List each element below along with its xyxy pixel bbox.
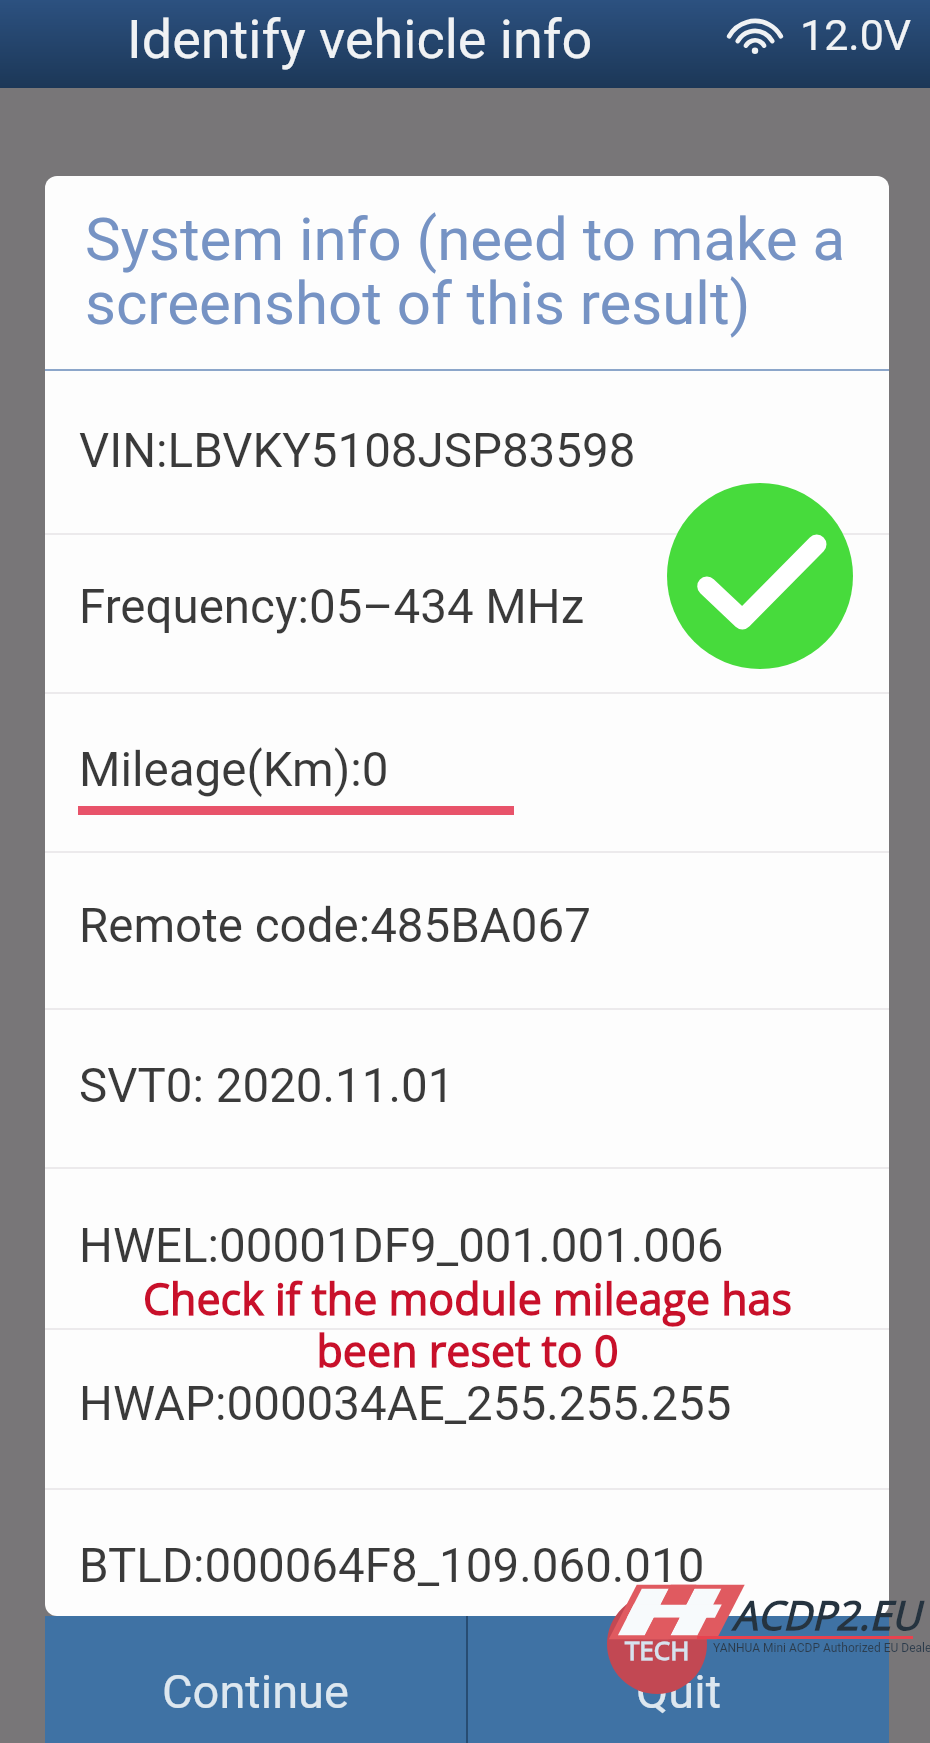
staticText: Check if the module mileage has been res… bbox=[143, 1269, 792, 1379]
staticText: HWAP:000034AE_255.255.255 bbox=[79, 1376, 732, 1432]
staticText: Quit bbox=[636, 1664, 722, 1719]
button[interactable]: Continue bbox=[45, 1616, 466, 1743]
other: Success bbox=[667, 483, 853, 669]
staticText: ACDP2.EU bbox=[732, 1587, 921, 1641]
button[interactable]: Identify vehicle info bbox=[0, 0, 930, 88]
staticText: Continue bbox=[162, 1664, 349, 1719]
button[interactable]: Quit bbox=[468, 1616, 889, 1743]
button[interactable]: Frequency:05–434 MHz bbox=[45, 535, 889, 694]
staticText: Remote code:485BA067 bbox=[79, 898, 591, 954]
staticText: TECH bbox=[625, 1632, 690, 1667]
staticText: BTLD:000064F8_109.060.010 bbox=[79, 1538, 705, 1594]
button[interactable]: HWAP:000034AE_255.255.255 bbox=[45, 1330, 889, 1490]
staticText: Mileage(Km):0 bbox=[79, 742, 389, 798]
staticText: Frequency:05–434 MHz bbox=[79, 579, 585, 635]
staticText: SVT0: 2020.11.01 bbox=[79, 1058, 455, 1114]
button[interactable]: SVT0: 2020.11.01 bbox=[45, 1010, 889, 1169]
button[interactable]: VIN:LBVKY5108JSP83598 bbox=[45, 371, 889, 535]
button[interactable]: HWEL:00001DF9_001.001.006 bbox=[45, 1169, 889, 1330]
staticText: YANHUA Mini ACDP Authorized EU Dealer bbox=[713, 1641, 930, 1655]
button[interactable]: Mileage(Km):0 bbox=[45, 694, 889, 853]
staticText: System info (need to make a screenshot o… bbox=[85, 204, 846, 339]
staticText: 12.0V bbox=[800, 10, 912, 60]
staticText: HWEL:00001DF9_001.001.006 bbox=[79, 1218, 724, 1274]
staticText: Identify vehicle info bbox=[127, 8, 593, 71]
button[interactable]: BTLD:000064F8_109.060.010 bbox=[45, 1490, 889, 1616]
button[interactable]: Remote code:485BA067 bbox=[45, 853, 889, 1010]
other: Wi-Fi connected bbox=[729, 19, 781, 55]
staticText: VIN:LBVKY5108JSP83598 bbox=[79, 423, 636, 479]
